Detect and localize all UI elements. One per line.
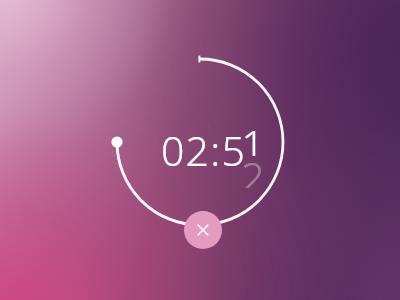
staticText: 1 (241, 116, 265, 156)
staticText: 2 (241, 148, 265, 188)
button[interactable]: Cancel timer (184, 211, 222, 249)
staticText: 02:5 (160, 122, 246, 166)
